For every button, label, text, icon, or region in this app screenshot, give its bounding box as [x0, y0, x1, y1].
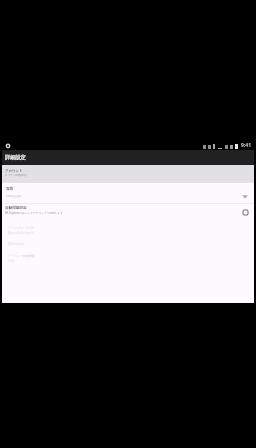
staticText: Wi-Fi接続時のみバックグラウンドで同期します: [5, 211, 64, 215]
staticText: 詳細: [8, 259, 15, 263]
staticText: アプリの: [8, 254, 22, 258]
staticText: 9:41: [241, 142, 251, 149]
staticText: 管理情報: [22, 254, 35, 258]
button[interactable]: 自動同期設定: [2, 204, 254, 221]
staticText: ディスプレイ設定: [8, 226, 34, 230]
other: Notification: [5, 143, 11, 149]
button[interactable]: 言語: [2, 183, 254, 203]
staticText: 自動同期設定: [5, 206, 27, 211]
staticText: アカウント: [5, 169, 23, 173]
staticText: 言語: [6, 187, 14, 192]
staticText: 日本語を選択: [6, 194, 22, 197]
other: Expand language list: [242, 194, 248, 200]
staticText: 通知の設定: [8, 242, 25, 246]
staticText: ログイン情報管理: [5, 173, 26, 176]
button[interactable]: Toggle auto sync: [243, 210, 248, 215]
staticText: 画面の明るさ配色: [8, 231, 34, 235]
button[interactable]: アカウント: [2, 165, 254, 183]
staticText: 詳細設定: [5, 154, 26, 161]
